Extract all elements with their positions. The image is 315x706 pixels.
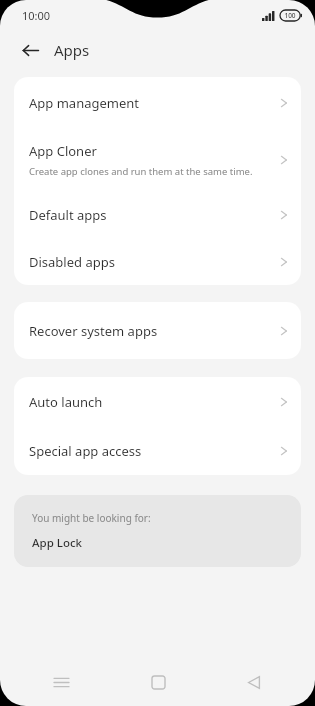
staticText: Recover system apps xyxy=(29,322,158,340)
staticText: 100 xyxy=(284,11,296,20)
button[interactable]: Recover system apps xyxy=(14,302,301,359)
staticText: App management xyxy=(29,94,139,112)
staticText: Default apps xyxy=(29,206,107,224)
button[interactable]: Back xyxy=(219,658,289,706)
button[interactable]: Special app access xyxy=(14,426,301,475)
staticText: App Cloner xyxy=(29,142,97,160)
staticText: Auto launch xyxy=(29,393,103,411)
staticText: Disabled apps xyxy=(29,253,115,271)
button[interactable]: App Cloner xyxy=(14,128,301,192)
staticText: Create app clones and run them at the sa… xyxy=(29,165,253,178)
button[interactable]: Home xyxy=(123,658,193,706)
button[interactable]: Back xyxy=(14,34,46,66)
staticText: 10:00 xyxy=(22,8,51,23)
staticText: You might be looking for: xyxy=(32,511,151,525)
staticText: App Lock xyxy=(32,535,83,551)
staticText: Special app access xyxy=(29,442,142,460)
staticText: Apps xyxy=(54,40,90,60)
button[interactable]: Auto launch xyxy=(14,377,301,426)
button[interactable]: Default apps xyxy=(14,192,301,238)
button[interactable]: Disabled apps xyxy=(14,238,301,285)
button[interactable]: App Lock xyxy=(14,525,301,561)
button[interactable]: App management xyxy=(14,77,301,128)
button[interactable]: Recent apps xyxy=(26,658,96,706)
